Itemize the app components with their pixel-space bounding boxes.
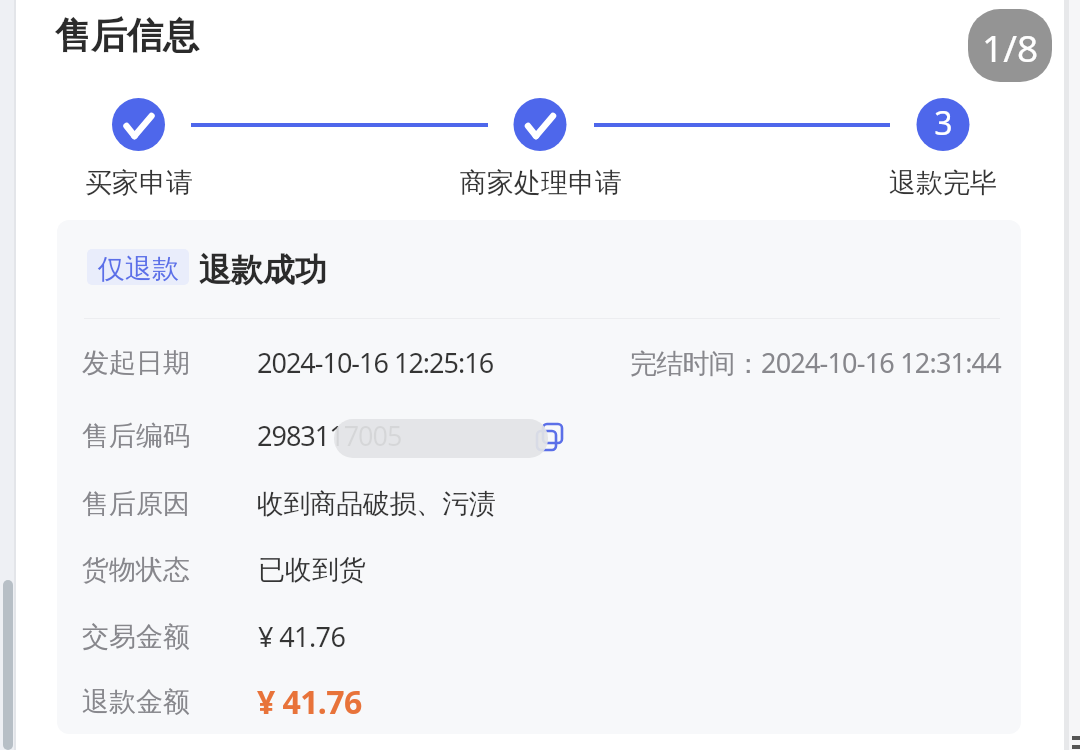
staticText: ¥ 41.76 (257, 680, 362, 724)
staticText: 发起日期 (82, 346, 190, 380)
staticText: 2983117005 (257, 417, 402, 454)
staticText: 售后编码 (82, 419, 190, 453)
staticText: 3 (934, 101, 953, 145)
button[interactable]: Page indicator 1 of 8 (968, 9, 1052, 82)
staticText: 货物状态 (82, 553, 190, 587)
staticText: 退款成功 (199, 250, 327, 290)
staticText: 1/8 (982, 22, 1039, 72)
staticText: 退款金额 (82, 685, 190, 719)
staticText: 已收到货 (258, 553, 366, 587)
staticText: 退款完毕 (889, 166, 997, 200)
button[interactable]: Copy after-sales code (536, 420, 572, 456)
staticText: 收到商品破损、污渍 (257, 487, 496, 521)
staticText: ¥ 41.76 (258, 618, 346, 655)
staticText: 2024-10-16 12:25:16 (257, 344, 494, 381)
staticText: 交易金额 (82, 620, 190, 654)
staticText: 售后信息 (55, 13, 199, 58)
staticText: 完结时间：2024-10-16 12:31:44 (630, 344, 1001, 381)
staticText: 仅退款 (98, 252, 179, 285)
staticText: 买家申请 (85, 166, 193, 200)
staticText: 售后原因 (82, 487, 190, 521)
staticText: 商家处理申请 (460, 166, 622, 200)
